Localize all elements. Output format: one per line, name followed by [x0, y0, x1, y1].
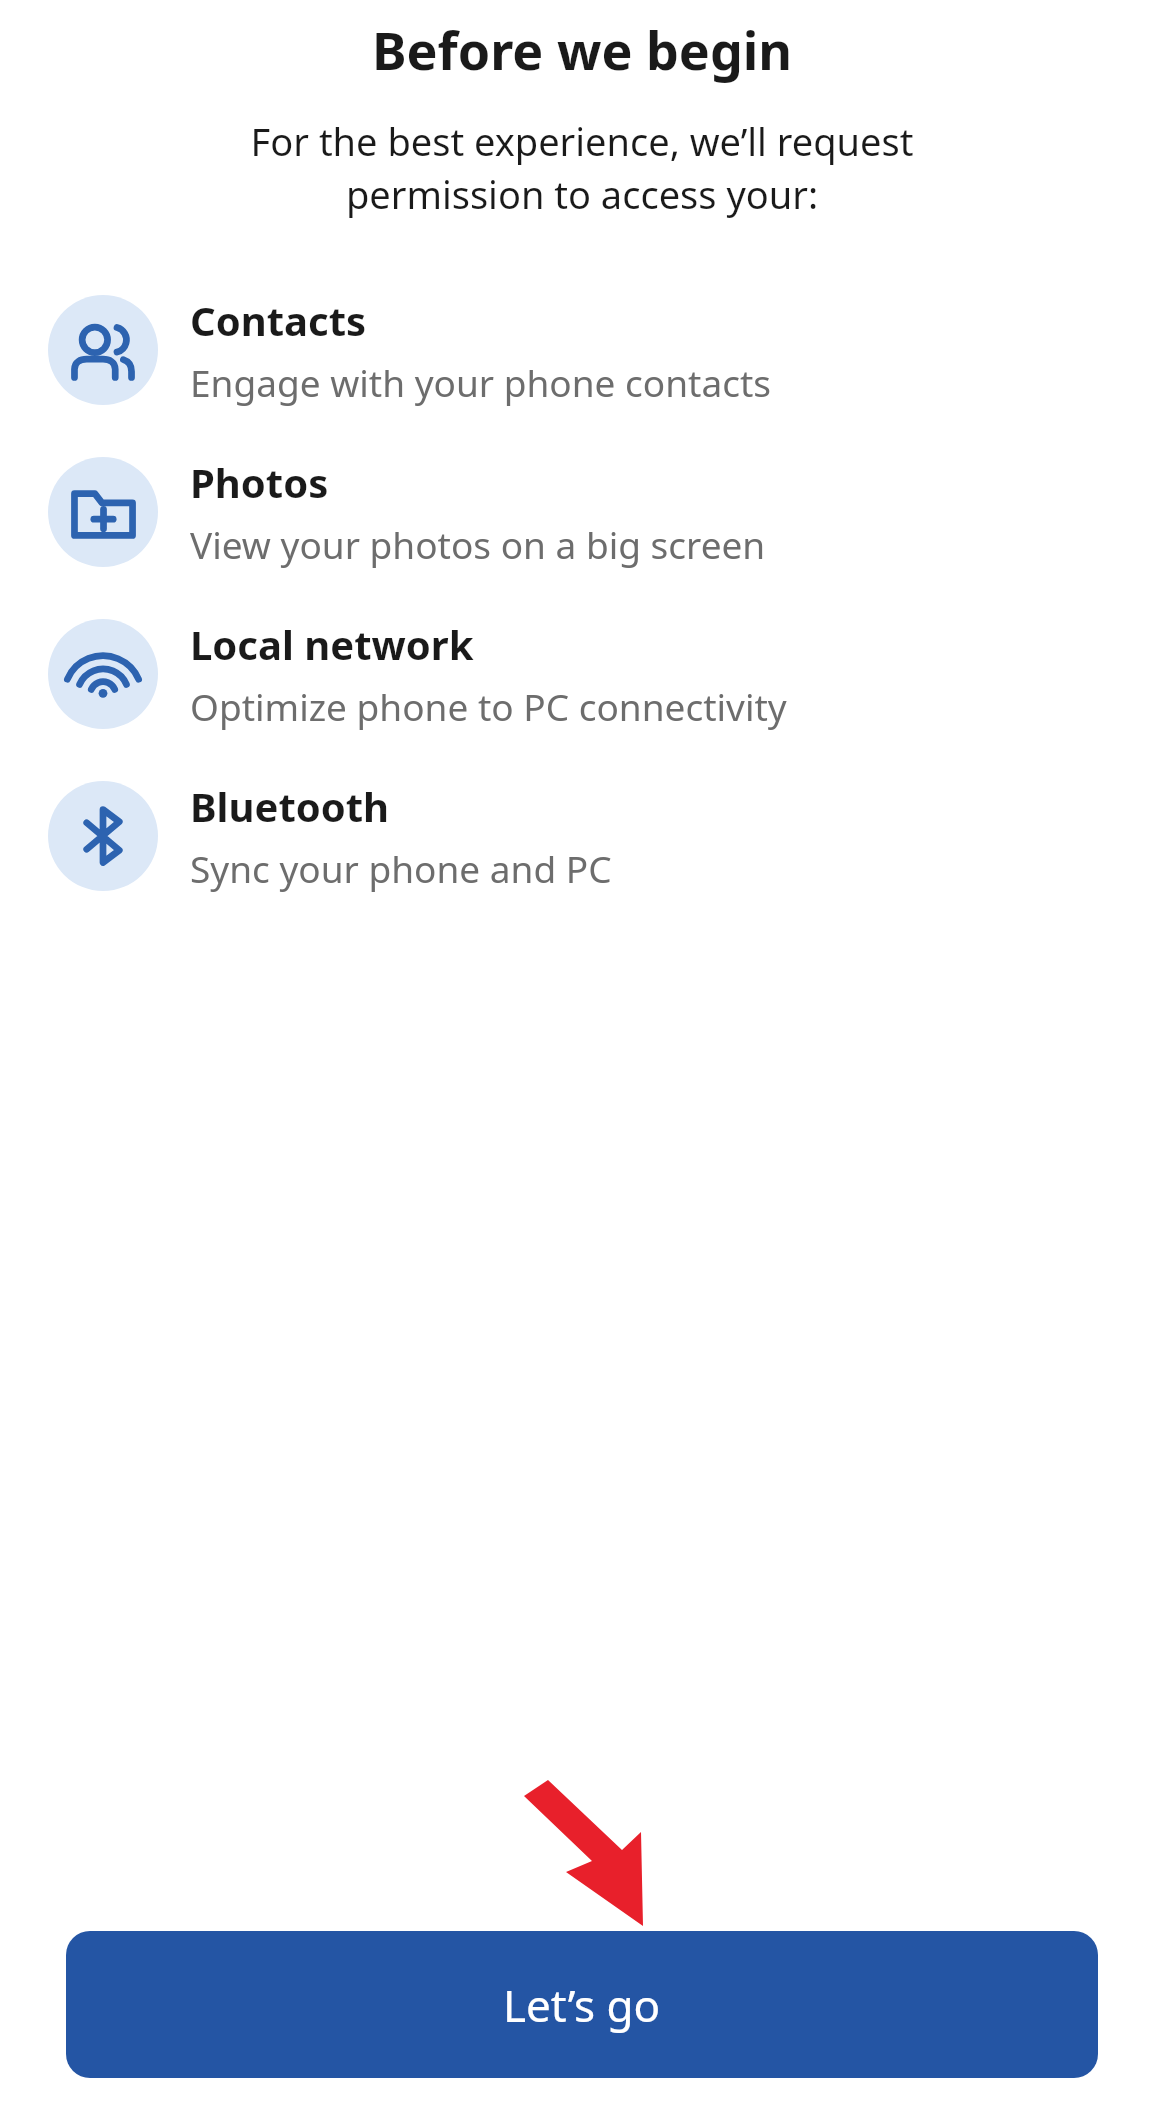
button[interactable]: Let’s go	[66, 1931, 1098, 2078]
other: Bluetooth	[48, 781, 158, 891]
staticText: Contacts	[190, 293, 367, 347]
other: Contacts	[48, 295, 158, 405]
other: Photos	[48, 457, 158, 567]
button[interactable]: Photos	[0, 441, 1164, 583]
button[interactable]: Bluetooth	[0, 765, 1164, 907]
staticText: Optimize phone to PC connectivity	[190, 681, 787, 731]
staticText: Bluetooth	[190, 779, 390, 833]
staticText: Before we begin	[0, 14, 1164, 85]
button[interactable]: Local network	[0, 603, 1164, 745]
staticText: For the best experience, we’ll request p…	[20, 115, 1144, 221]
staticText: Engage with your phone contacts	[190, 357, 772, 407]
other: Local network	[48, 619, 158, 729]
staticText: View your photos on a big screen	[190, 519, 766, 569]
staticText: Let’s go	[503, 1975, 661, 2035]
staticText: Local network	[190, 617, 474, 671]
staticText: Sync your phone and PC	[190, 843, 612, 893]
staticText: Photos	[190, 455, 329, 509]
button[interactable]: Contacts	[0, 279, 1164, 421]
